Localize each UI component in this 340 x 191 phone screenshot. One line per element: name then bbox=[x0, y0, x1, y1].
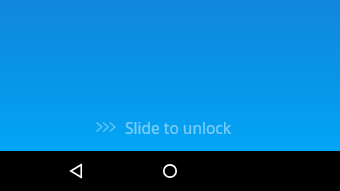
staticText: Slide to unlock bbox=[125, 117, 232, 138]
button[interactable]: Home bbox=[150, 151, 190, 191]
button[interactable]: Back bbox=[56, 151, 96, 191]
button[interactable]: Slide to unlock bbox=[95, 116, 232, 138]
button[interactable]: Slide to unlock bbox=[0, 0, 340, 151]
other: Slide to unlock bbox=[95, 119, 119, 135]
